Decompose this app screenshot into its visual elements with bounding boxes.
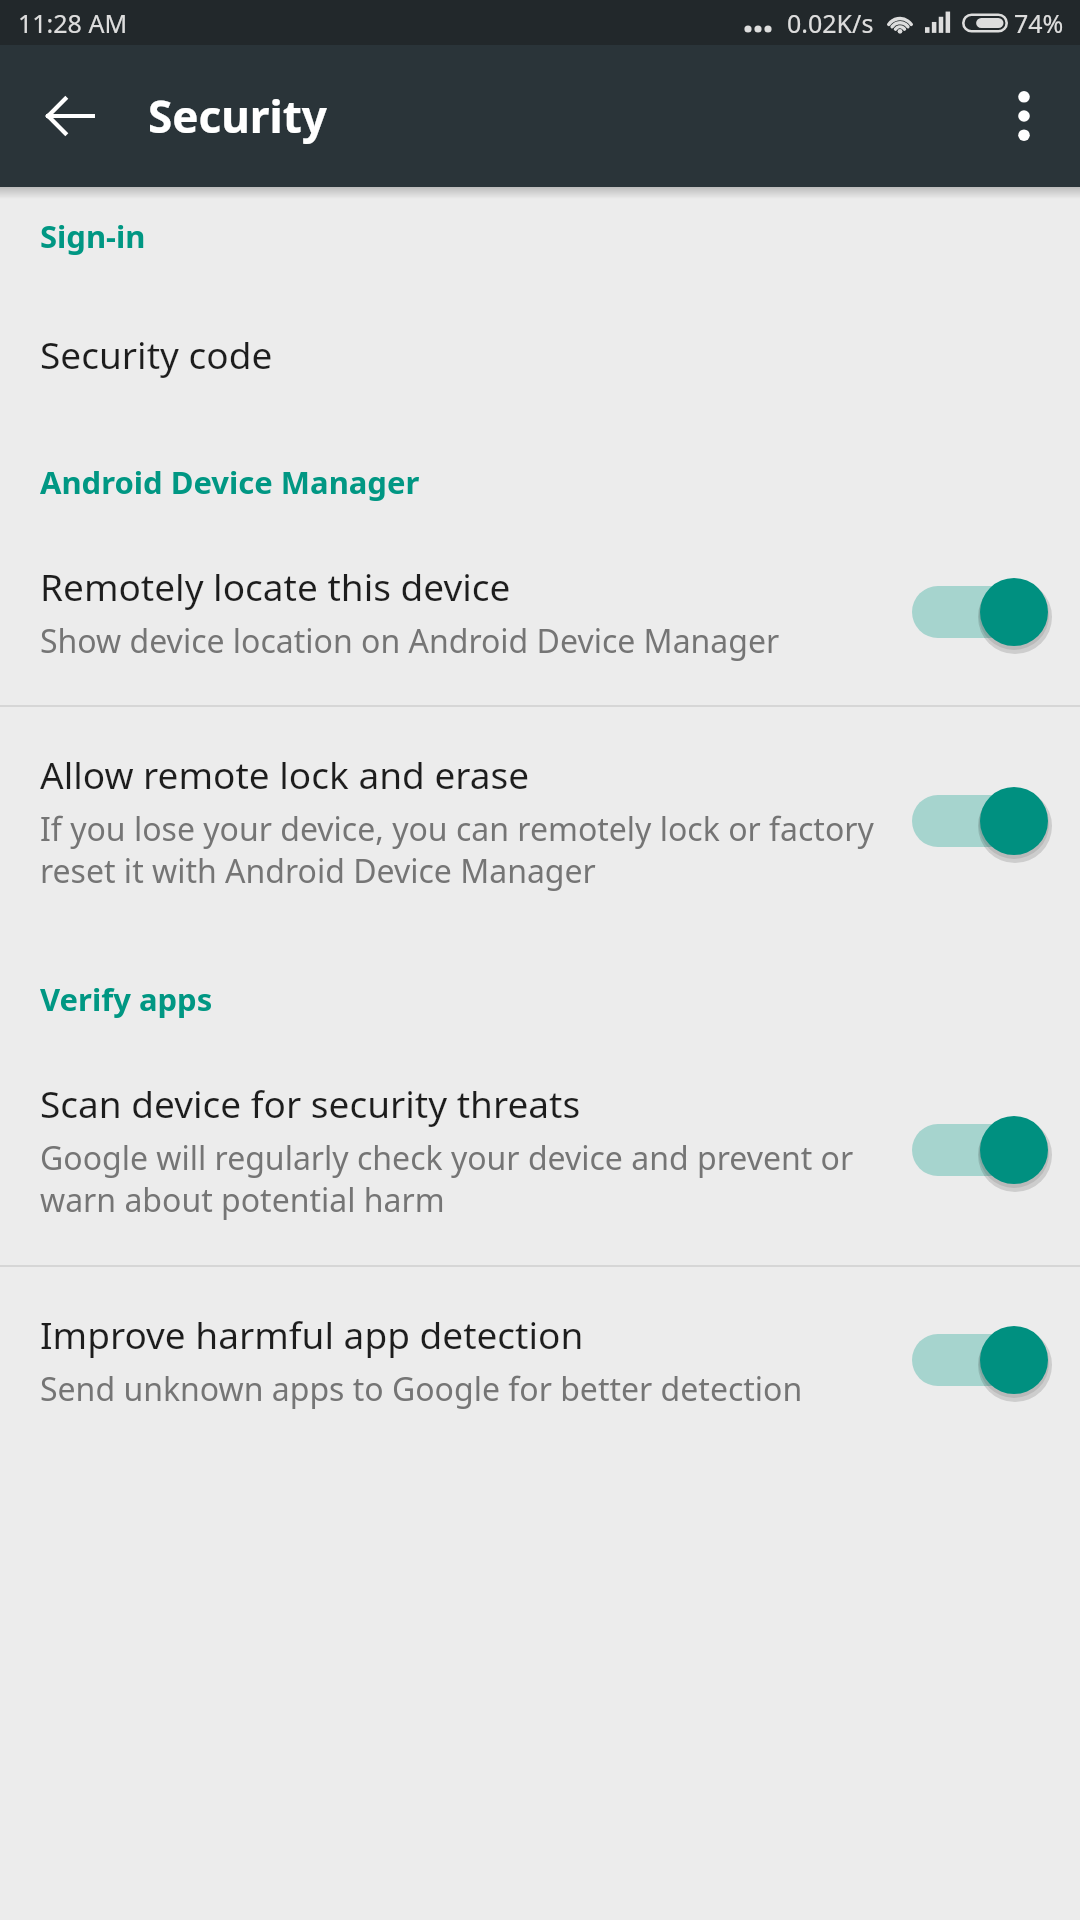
button[interactable]: Toggle, on xyxy=(916,573,1046,651)
staticText: 0.02K/s xyxy=(787,6,874,40)
button[interactable]: Allow remote lock and erase xyxy=(0,707,1080,930)
button[interactable]: Improve harmful app detection xyxy=(0,1267,1080,1447)
staticText: Sign-in xyxy=(40,215,146,257)
staticText: Send unknown apps to Google for better d… xyxy=(40,1367,803,1411)
staticText: Security code xyxy=(40,329,273,379)
staticText: Android Device Manager xyxy=(40,461,420,503)
staticText: Verify apps xyxy=(40,978,213,1020)
button[interactable]: Security code xyxy=(0,257,1080,399)
button[interactable]: Back xyxy=(28,74,112,158)
staticText: 11:28 AM xyxy=(18,6,128,40)
staticText: If you lose your device, you can remotel… xyxy=(40,807,892,892)
staticText: 74% xyxy=(1014,6,1064,40)
button[interactable]: Remotely locate this device xyxy=(0,503,1080,705)
button[interactable]: Toggle, on xyxy=(916,782,1046,860)
staticText: Remotely locate this device xyxy=(40,561,511,611)
staticText: Security xyxy=(148,86,327,146)
staticText: Improve harmful app detection xyxy=(40,1309,584,1359)
button[interactable]: Toggle, on xyxy=(916,1321,1046,1399)
staticText: Show device location on Android Device M… xyxy=(40,619,780,663)
staticText: Scan device for security threats xyxy=(40,1078,581,1128)
staticText: Google will regularly check your device … xyxy=(40,1136,892,1221)
button[interactable]: Scan device for security threats xyxy=(0,1020,1080,1265)
button[interactable]: More options xyxy=(982,74,1066,158)
staticText: Allow remote lock and erase xyxy=(40,749,530,799)
button[interactable]: Toggle, on xyxy=(916,1111,1046,1189)
